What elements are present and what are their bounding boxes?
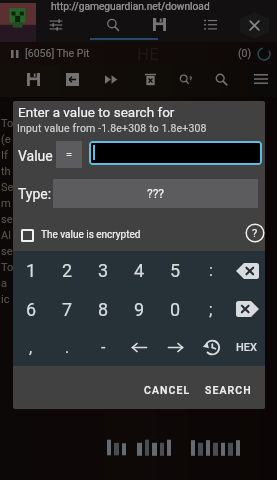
staticText: ic [1,293,10,306]
button[interactable]: 3 [85,251,121,290]
staticText: The value is encrypted [41,229,141,241]
staticText: : [209,261,213,280]
staticText: = [66,148,73,161]
button[interactable]: Delete [229,290,265,328]
staticText: 1 [26,260,37,281]
button[interactable]: Tool 3 [100,68,122,90]
staticText: ??? [147,187,165,201]
button[interactable]: : [193,251,229,290]
staticText: 4 [134,260,145,281]
staticText: , [29,338,33,357]
button[interactable]: 7 [49,290,85,328]
staticText: [6056] The Pit [25,47,90,59]
staticText: - [101,338,106,357]
button[interactable]: ; [193,290,229,328]
staticText: CANCEL [144,384,191,396]
staticText: ? [252,227,258,240]
staticText: 5 [170,260,181,281]
staticText: Value [18,148,53,164]
staticText: 8 [98,299,109,320]
button[interactable]: Tool 6 [210,68,232,90]
button[interactable]: Help [245,223,265,243]
staticText: se [1,213,13,226]
staticText: th [1,165,11,178]
staticText: (0) [238,47,252,59]
staticText: 7 [62,299,73,320]
button[interactable]: History [193,328,229,366]
staticText: a [1,277,7,290]
button[interactable]: Menu [249,67,273,91]
staticText: SEARCH [205,384,252,396]
staticText: Enter a value to search for [18,104,175,120]
button[interactable]: Tool 1 [22,68,44,90]
staticText: (e [1,133,11,146]
staticText: HEX [236,341,258,354]
button[interactable]: Move right [157,328,193,366]
staticText: To [1,117,14,130]
staticText: Al [1,229,11,242]
button[interactable]: 5 [157,251,193,290]
button[interactable]: 0 [157,290,193,328]
button[interactable]: HEX [229,328,265,366]
staticText: HE [137,44,159,64]
button[interactable]: SEARCH [198,377,258,403]
button[interactable]: 4 [121,251,157,290]
other: Move left [131,339,148,356]
staticText: se [1,245,13,258]
staticText: 2 [62,260,73,281]
staticText: . [65,338,70,357]
button[interactable]: The value is encrypted [21,225,141,245]
button[interactable]: 1 [13,251,49,290]
button[interactable]: Tool 2 [61,68,83,90]
staticText: Se [1,181,14,194]
button[interactable]: , [13,328,49,366]
button[interactable]: 9 [121,290,157,328]
staticText: If [1,149,8,162]
button[interactable]: 2 [49,251,85,290]
button[interactable]: Tool 4 [139,68,161,90]
staticText: 0 [170,299,181,320]
staticText: Input value from -1.8e+308 to 1.8e+308 [17,122,207,134]
staticText: 6 [26,299,37,320]
button[interactable]: = [56,141,82,168]
staticText: 3 [98,260,109,281]
other: History [203,339,220,356]
staticText: Type: [18,186,52,202]
button[interactable]: CANCEL [137,377,197,403]
button[interactable]: Move left [121,328,157,366]
staticText: m [1,197,11,210]
button[interactable]: Backspace [229,251,265,290]
button[interactable]: . [49,328,85,366]
button[interactable]: 8 [85,290,121,328]
other: Backspace [236,263,259,279]
staticText: ; [209,300,213,319]
staticText: To [1,261,14,274]
other: Delete [236,301,259,317]
button[interactable]: 6 [13,290,49,328]
other: Move right [167,339,184,356]
button[interactable] [89,141,262,165]
button[interactable]: ??? [53,179,258,208]
button[interactable]: - [85,328,121,366]
staticText: http://gameguardian.net/download [51,1,210,13]
button[interactable]: Tool 5 [174,68,196,90]
staticText: 9 [134,299,145,320]
